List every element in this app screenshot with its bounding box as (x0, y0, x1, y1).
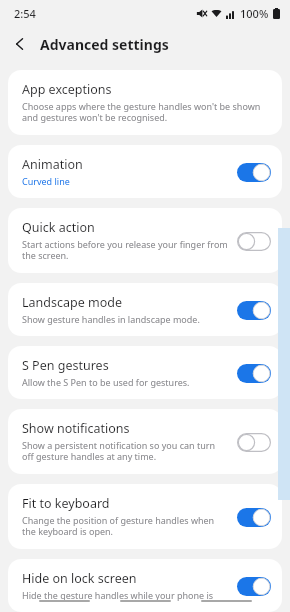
button[interactable]: S Pen gestures (8, 346, 282, 399)
button[interactable]: Quick action (8, 208, 282, 273)
button[interactable]: Home (117, 594, 173, 608)
staticText: 2:54 (14, 6, 36, 21)
staticText: Change the position of gesture handles w… (22, 514, 228, 538)
button[interactable]: Recents (36, 594, 92, 608)
staticText: Allow the S Pen to be used for gestures. (22, 376, 190, 388)
staticText: Choose apps where the gesture handles wo… (22, 100, 272, 124)
staticText: Hide on lock screen (22, 570, 137, 587)
button[interactable]: Hide on lock screen (8, 559, 282, 612)
button[interactable]: Animation (8, 145, 282, 198)
staticText: Landscape mode (22, 294, 122, 311)
button[interactable]: Back (0, 26, 40, 62)
staticText: S Pen gestures (22, 357, 109, 374)
button[interactable]: Back (198, 594, 254, 608)
staticText: 100% (240, 6, 269, 21)
staticText: Animation (22, 156, 83, 173)
staticText: Curved line (22, 175, 70, 187)
staticText: Show gesture handles in landscape mode. (22, 313, 200, 325)
staticText: Start actions before you release your fi… (22, 238, 228, 262)
staticText: Quick action (22, 219, 95, 236)
button[interactable]: Off (236, 431, 272, 453)
staticText: Show notifications (22, 420, 130, 437)
button[interactable]: On (236, 506, 272, 528)
button[interactable]: App exceptions (8, 70, 282, 135)
button[interactable]: On (236, 575, 272, 597)
staticText: App exceptions (22, 81, 112, 98)
button[interactable]: On (236, 161, 272, 183)
button[interactable]: On (236, 362, 272, 384)
button[interactable]: Show notifications (8, 409, 282, 474)
staticText: Show a persistent notification so you ca… (22, 439, 228, 463)
staticText: Fit to keyboard (22, 495, 110, 512)
button[interactable]: On (236, 299, 272, 321)
button[interactable]: Fit to keyboard (8, 484, 282, 549)
staticText: Hide the gesture handles while your phon… (22, 589, 228, 601)
button[interactable]: Landscape mode (8, 283, 282, 336)
staticText: Advanced settings (40, 35, 169, 54)
button[interactable]: Off (236, 230, 272, 252)
